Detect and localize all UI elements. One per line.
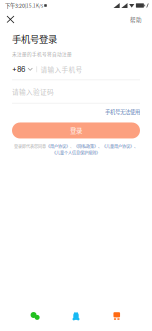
- staticText: 请输入手机号: [41, 64, 83, 74]
- staticText: 手机号登录: [12, 32, 57, 45]
- button[interactable]: 手机号无法使用: [105, 104, 140, 117]
- staticText: 《儿童个人信息保护规则》: [52, 150, 100, 156]
- button[interactable]: 登录: [12, 117, 140, 138]
- staticText: |15.1K/s: [25, 2, 43, 9]
- staticText: 《用户协议》: [46, 143, 70, 149]
- staticText: 下午3:20: [5, 2, 25, 9]
- staticText: 《隐私政策》、《儿童用户协议》、: [74, 143, 138, 149]
- staticText: 手机号无法使用: [105, 108, 140, 115]
- staticText: 登录即代表您同意: [14, 143, 46, 149]
- staticText: 未注册的手机号将自动注册: [12, 50, 72, 57]
- button[interactable]: 微信登录: [30, 311, 41, 321]
- button[interactable]: 帮助: [123, 12, 152, 26]
- staticText: 、: [70, 143, 74, 149]
- button[interactable]: 其他方式登录: [111, 311, 122, 321]
- staticText: +86: [12, 65, 25, 74]
- staticText: 请输入验证码: [12, 87, 54, 96]
- staticText: 登录: [70, 126, 82, 135]
- button[interactable]: QQ登录: [70, 311, 81, 321]
- staticText: 帮助: [130, 15, 142, 23]
- button[interactable]: 关闭: [0, 13, 21, 26]
